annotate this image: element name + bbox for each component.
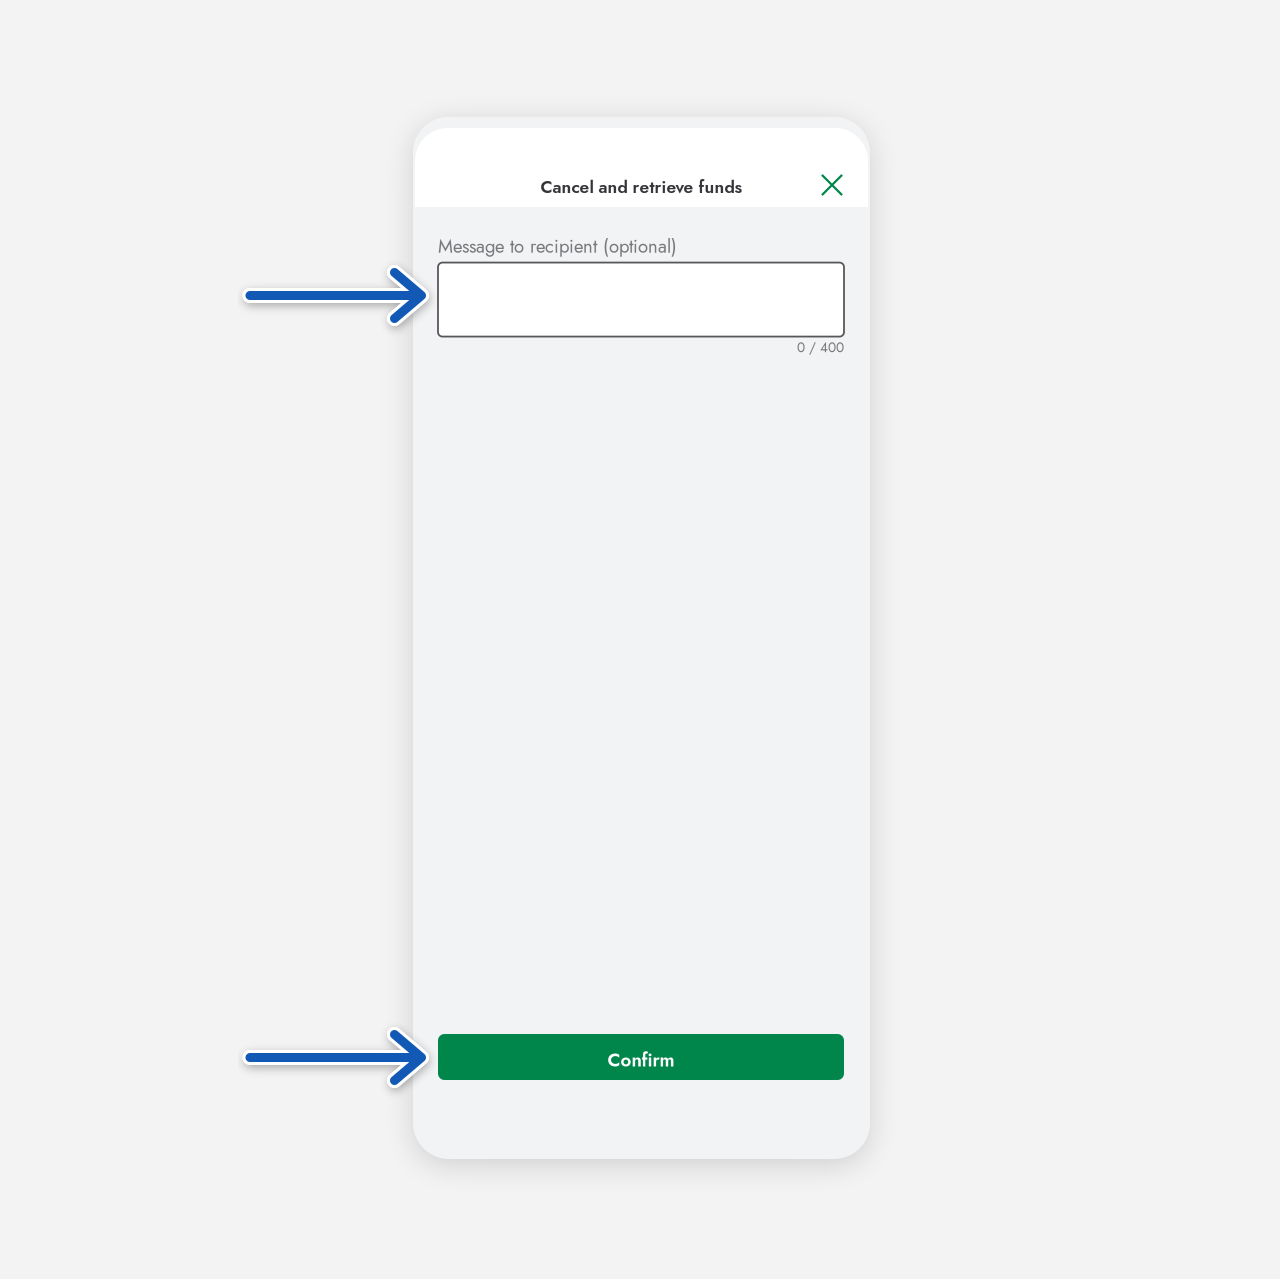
staticText: Confirm	[607, 1046, 674, 1073]
staticText: Cancel and retrieve funds	[540, 174, 742, 199]
staticText: Message to recipient (optional)	[438, 233, 677, 260]
button[interactable]: Message to recipient, optional	[438, 263, 844, 337]
staticText: 0 / 400	[797, 338, 844, 357]
button[interactable]: Confirm	[438, 1034, 844, 1080]
button[interactable]: Close	[810, 163, 854, 207]
